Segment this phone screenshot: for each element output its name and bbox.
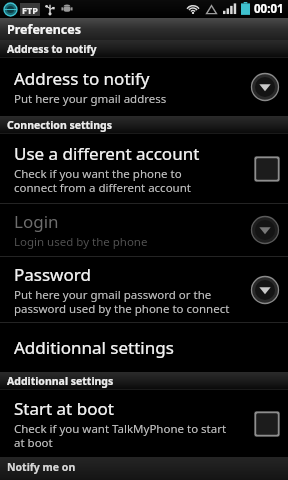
staticText: Check if you want the phone to connect f… (14, 166, 191, 195)
button[interactable]: Password (0, 257, 288, 323)
button[interactable]: Start at boot (0, 390, 288, 458)
staticText: Additionnal settings (14, 336, 174, 359)
staticText: Login used by the phone (14, 234, 148, 250)
button[interactable]: Edit password (250, 275, 280, 305)
staticText: Password (14, 263, 91, 286)
button[interactable]: Edit login (250, 215, 280, 245)
staticText: Login (14, 210, 59, 233)
staticText: 00:01 (254, 1, 284, 17)
button[interactable]: Use a different account (0, 134, 288, 204)
button[interactable]: Login (0, 204, 288, 257)
button[interactable]: Open address to notify (250, 72, 280, 102)
staticText: Preferences (7, 21, 81, 38)
staticText: Connection settings (7, 118, 112, 132)
staticText: Put here your gmail address (14, 91, 167, 107)
staticText: Put here your gmail password or the pass… (14, 287, 230, 316)
staticText: Use a different account (14, 142, 200, 165)
staticText: Notify me on (7, 460, 76, 474)
staticText: FTP (22, 4, 38, 16)
staticText: Check if you want TalkMyPhone to start a… (14, 421, 227, 450)
button[interactable]: Start at boot checkbox (254, 411, 280, 437)
staticText: Start at boot (14, 397, 114, 420)
staticText: Additionnal settings (7, 374, 114, 388)
staticText: Address to notify (14, 67, 150, 90)
button[interactable]: Additionnal settings (0, 323, 288, 372)
button[interactable]: Address to notify (0, 58, 288, 116)
staticText: Address to notify (7, 42, 97, 56)
button[interactable]: Use a different account checkbox (254, 156, 280, 182)
